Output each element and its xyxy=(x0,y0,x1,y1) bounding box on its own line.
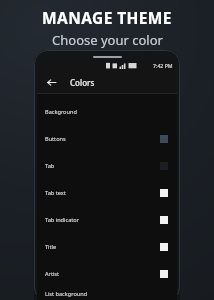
staticText: Buttons xyxy=(45,135,66,143)
staticText: Colors xyxy=(70,77,95,88)
staticText: Background xyxy=(45,108,77,116)
staticText: Choose your color xyxy=(52,31,163,49)
staticText: MANAGE THEME xyxy=(42,7,172,28)
button[interactable]: Buttons xyxy=(37,125,177,152)
staticText: 7:42 PM xyxy=(153,62,173,69)
button[interactable]: Artist xyxy=(37,260,177,287)
button[interactable]: List background xyxy=(37,287,177,300)
button[interactable]: Back xyxy=(43,74,59,90)
staticText: Artist xyxy=(45,270,60,278)
button[interactable]: Tab indicator xyxy=(37,206,177,233)
button[interactable]: Background xyxy=(37,98,177,125)
staticText: List background xyxy=(45,290,88,298)
staticText: Tab indicator xyxy=(45,216,80,224)
staticText: Tab xyxy=(45,162,55,170)
staticText: Title xyxy=(45,243,57,251)
staticText: Tab text xyxy=(45,189,66,197)
button[interactable]: Tab xyxy=(37,152,177,179)
button[interactable]: Title xyxy=(37,233,177,260)
button[interactable]: Tab text xyxy=(37,179,177,206)
